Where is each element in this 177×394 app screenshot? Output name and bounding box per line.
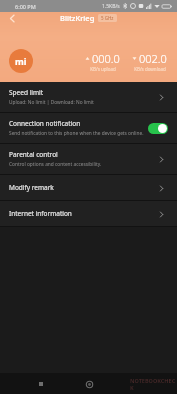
button[interactable]: Connection notification bbox=[0, 113, 177, 143]
staticText: Internet information bbox=[9, 209, 72, 218]
button[interactable]: Connection notification toggle bbox=[148, 123, 168, 134]
staticText: Connection notification bbox=[9, 119, 81, 128]
button[interactable]: Modify remark bbox=[0, 175, 177, 200]
staticText: Speed limit bbox=[9, 88, 44, 97]
staticText: Upload: No limit | Download: No limit bbox=[9, 99, 94, 106]
staticText: mi bbox=[15, 55, 27, 67]
staticText: Control options and content accessibilit… bbox=[9, 161, 102, 168]
staticText: KB/s upload bbox=[90, 66, 116, 72]
staticText: Send notification to this phone when the… bbox=[9, 130, 144, 137]
staticText: 1.5KB/s bbox=[102, 3, 120, 10]
staticText: 000.0 bbox=[92, 51, 120, 66]
button[interactable]: Speed limit bbox=[0, 82, 177, 112]
button[interactable]: Parental control bbox=[0, 144, 177, 174]
staticText: Parental control bbox=[9, 150, 58, 159]
staticText: KB/s download bbox=[134, 66, 166, 72]
staticText: BlitzKrieg bbox=[60, 13, 95, 23]
staticText: NOTEBOOKCHECK bbox=[130, 377, 177, 391]
staticText: 6:00 PM bbox=[15, 3, 36, 10]
button[interactable]: Recents bbox=[34, 377, 48, 391]
button[interactable]: Back bbox=[0, 12, 24, 24]
button[interactable]: Home bbox=[82, 377, 96, 391]
staticText: 002.0 bbox=[139, 51, 167, 66]
button[interactable]: Internet information bbox=[0, 201, 177, 226]
staticText: 5 GHz bbox=[101, 15, 114, 21]
staticText: Modify remark bbox=[9, 183, 54, 192]
